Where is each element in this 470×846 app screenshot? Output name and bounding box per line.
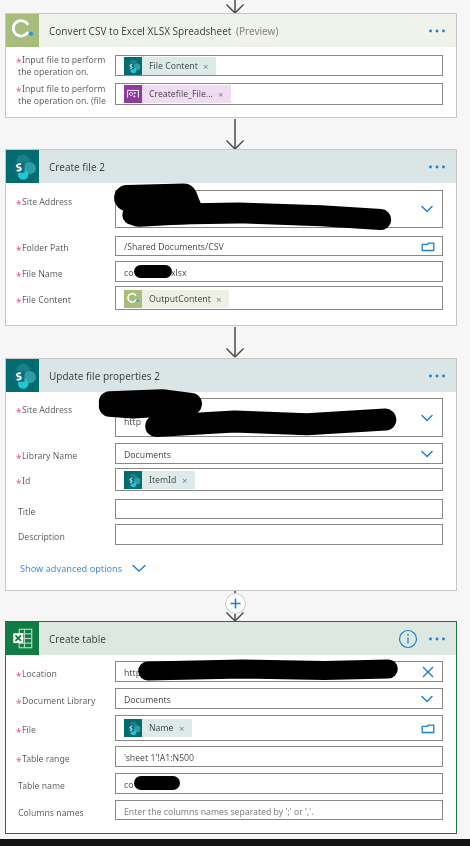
button[interactable] [115, 715, 443, 741]
staticText: 'sheet 1'!A1:N500 [124, 752, 195, 764]
staticText: Description [18, 531, 65, 543]
button[interactable] [115, 286, 443, 310]
staticText: Site Address [22, 404, 73, 416]
staticText: Update file properties 2 [49, 369, 160, 383]
staticText: File Name [22, 268, 63, 280]
staticText: * [16, 754, 22, 768]
staticText: × [216, 293, 222, 306]
button[interactable]: More commands [425, 627, 449, 651]
button[interactable]: Browse files [420, 721, 436, 737]
staticText: Id [22, 475, 31, 487]
staticText: Name [149, 722, 174, 734]
button[interactable]: Createfile_File... [124, 85, 231, 103]
staticText: OutputContent [149, 293, 211, 305]
staticText: Show advanced options [20, 562, 123, 575]
button[interactable] [115, 443, 443, 464]
button[interactable]: Create table [6, 622, 456, 655]
button[interactable] [115, 261, 443, 282]
staticText: https [124, 667, 146, 679]
button[interactable]: Information [395, 626, 421, 652]
button[interactable] [115, 55, 443, 76]
staticText: ItemId [149, 474, 177, 486]
button[interactable] [115, 499, 443, 519]
button[interactable]: Update file properties 2 [6, 359, 456, 392]
staticText: Input file to perform [22, 83, 106, 95]
staticText: × [218, 88, 224, 101]
staticText: Create file 2 [49, 160, 105, 174]
button[interactable] [115, 688, 443, 709]
button[interactable]: Create file 2 [6, 150, 456, 183]
button[interactable]: OutputContent [124, 290, 229, 308]
button[interactable]: Show advanced options [20, 559, 147, 577]
staticText: Create table [49, 632, 106, 646]
staticText: * [16, 295, 22, 309]
staticText: co [124, 267, 134, 279]
staticText: * [16, 243, 22, 257]
button[interactable]: File Content [124, 57, 216, 75]
staticText: Input file to perform [22, 54, 106, 66]
button[interactable] [115, 524, 443, 545]
staticText: http [124, 416, 141, 428]
button[interactable]: More commands [425, 155, 449, 179]
staticText: co [124, 779, 134, 791]
staticText: * [16, 669, 22, 683]
staticText: * [16, 84, 22, 98]
button[interactable] [115, 83, 443, 105]
staticText: Site Address [22, 196, 73, 208]
staticText: /Shared Documents/CSV [124, 241, 224, 253]
staticText: × [203, 60, 209, 73]
button[interactable] [115, 746, 443, 767]
button[interactable]: More commands [425, 364, 449, 388]
staticText: * [16, 197, 22, 211]
staticText: Columns names [18, 807, 84, 819]
button[interactable] [115, 468, 443, 491]
staticText: Location [22, 668, 57, 680]
staticText: Documents [124, 694, 171, 706]
staticText: Document Library [22, 695, 96, 707]
button[interactable]: Convert CSV to Excel XLSX Spreadsheet [6, 14, 456, 47]
button[interactable]: Expand [419, 446, 435, 462]
button[interactable] [115, 398, 443, 437]
staticText: Createfile_File... [149, 88, 213, 100]
staticText: Documents [124, 449, 171, 461]
staticText: Table name [18, 780, 66, 792]
staticText: * [16, 476, 22, 490]
staticText: × [182, 474, 188, 487]
button[interactable] [115, 236, 443, 256]
staticText: (Preview) [236, 24, 279, 38]
button[interactable]: Clear value [420, 664, 436, 680]
staticText: Library Name [22, 450, 78, 462]
button[interactable]: Expand [419, 410, 435, 426]
button[interactable]: Expand [419, 691, 435, 707]
button[interactable]: ItemId [124, 471, 195, 489]
staticText: Enter the columns names separated by ';'… [124, 806, 314, 818]
staticText: * [16, 696, 22, 710]
staticText: Folder Path [22, 242, 69, 254]
button[interactable] [115, 800, 443, 820]
button[interactable] [115, 773, 443, 794]
button[interactable] [115, 190, 443, 228]
button[interactable] [115, 661, 443, 682]
button[interactable]: Add an action [225, 593, 246, 614]
staticText: * [16, 55, 22, 69]
button[interactable]: Name [124, 719, 192, 737]
staticText: File [22, 724, 36, 736]
staticText: xlsx [171, 267, 187, 279]
button[interactable]: Browse files [420, 239, 436, 255]
staticText: Title [18, 506, 36, 518]
staticText: the operation on. [18, 66, 89, 78]
staticText: * [16, 269, 22, 283]
staticText: File Content [22, 294, 71, 306]
staticText: Convert CSV to Excel XLSX Spreadsheet [49, 24, 232, 38]
staticText: the operation on. (file [18, 95, 106, 107]
staticText: * [16, 725, 22, 739]
button[interactable]: Expand [419, 201, 435, 217]
staticText: × [179, 722, 185, 735]
staticText: * [16, 405, 22, 419]
staticText: Table range [22, 753, 70, 765]
staticText: File Content [149, 60, 198, 72]
button[interactable]: More commands [425, 19, 449, 43]
staticText: * [16, 451, 22, 465]
